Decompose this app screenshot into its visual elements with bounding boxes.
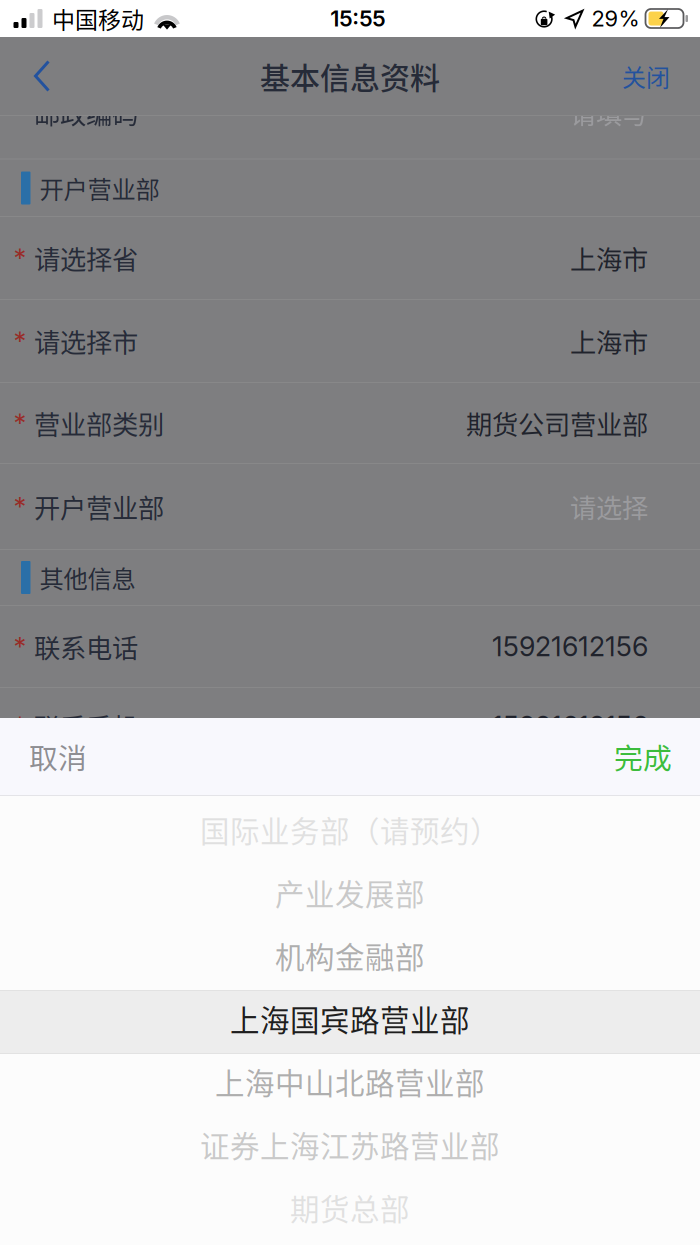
staticText: 基本信息资料 [260, 54, 440, 98]
staticText: * [13, 631, 26, 662]
button[interactable]: * [0, 688, 700, 765]
staticText: 请选择 [570, 487, 648, 526]
staticText: 期货公司营业部 [466, 404, 648, 442]
staticText: * [13, 710, 26, 742]
staticText: 中国移动 [52, 2, 144, 35]
button[interactable]: * [0, 464, 700, 550]
staticText: 营业部类别 [34, 404, 164, 442]
staticText: 联系手机 [34, 707, 138, 745]
button[interactable]: 机构金融部 [0, 924, 700, 987]
button[interactable]: Back [0, 37, 80, 114]
button[interactable]: 国际业务部（请预约） [0, 798, 700, 861]
staticText: 请填写 [570, 93, 648, 132]
staticText: 关闭 [622, 59, 670, 93]
button[interactable]: 关闭 [592, 33, 700, 119]
staticText: 上海国宾路营业部 [230, 997, 470, 1040]
staticText: 上海市 [570, 322, 648, 360]
staticText: 15921612156 [492, 630, 648, 663]
staticText: 请选择省 [34, 239, 138, 277]
staticText: 国际业务部（请预约） [200, 808, 500, 851]
staticText: 15:55 [330, 5, 385, 32]
button[interactable]: * [0, 606, 700, 688]
button[interactable]: 期货总部 [0, 1176, 700, 1239]
staticText: 产业发展部 [275, 871, 425, 914]
button[interactable]: 上海国宾路营业部 [0, 987, 700, 1050]
staticText: 上海市 [570, 239, 648, 277]
staticText: * [13, 242, 26, 274]
staticText: 证券上海江苏路营业部 [200, 1123, 500, 1166]
staticText: 上海中山北路营业部 [215, 1060, 485, 1103]
staticText: 开户营业部 [39, 170, 159, 206]
button[interactable]: * [0, 217, 700, 300]
staticText: 其他信息 [39, 560, 135, 595]
button[interactable]: 产业发展部 [0, 861, 700, 924]
staticText: * [13, 491, 26, 522]
staticText: 完成 [614, 736, 672, 777]
button[interactable]: * [0, 300, 700, 383]
staticText: * [13, 325, 26, 357]
staticText: 15921612156 [492, 710, 648, 742]
staticText: 取消 [29, 736, 87, 777]
staticText: * [13, 407, 26, 439]
button[interactable]: 证券上海江苏路营业部 [0, 1113, 700, 1176]
button[interactable]: * [0, 383, 700, 464]
button[interactable]: 取消 [0, 714, 121, 799]
staticText: 期货总部 [290, 1186, 410, 1229]
button[interactable]: 完成 [580, 714, 700, 799]
staticText: 联系电话 [34, 627, 138, 666]
staticText: 29% [591, 5, 639, 32]
staticText: 邮政编码 [34, 93, 138, 132]
staticText: 开户营业部 [34, 487, 164, 526]
button[interactable]: 上海中山北路营业部 [0, 1050, 700, 1113]
staticText: 机构金融部 [275, 934, 425, 977]
staticText: 请选择市 [34, 322, 138, 360]
